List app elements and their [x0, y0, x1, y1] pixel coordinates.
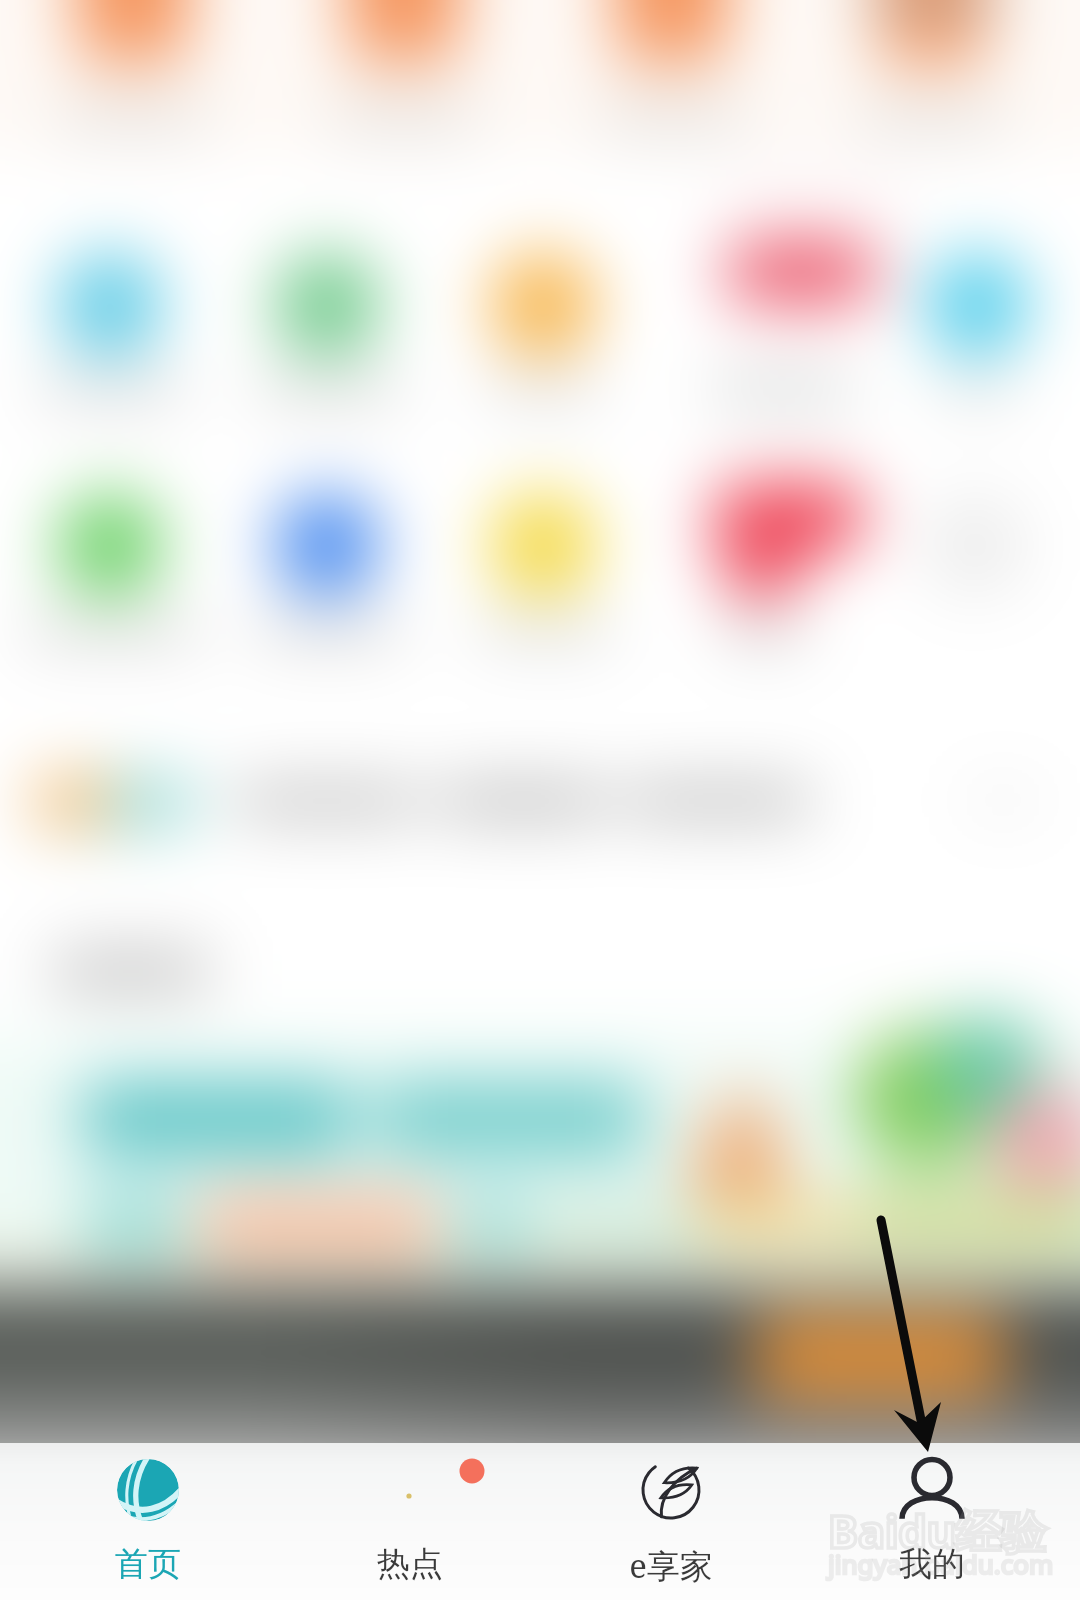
staticText: e享家 — [629, 1543, 713, 1588]
staticText: 首页 — [115, 1543, 181, 1585]
button[interactable]: 热点 — [270, 1443, 540, 1600]
staticText: 热点 — [377, 1543, 443, 1585]
staticText: 我的 — [899, 1543, 965, 1585]
button[interactable]: e享家 — [540, 1443, 810, 1600]
button[interactable]: 我的 — [810, 1443, 1080, 1600]
button[interactable]: 首页 — [0, 1443, 270, 1600]
